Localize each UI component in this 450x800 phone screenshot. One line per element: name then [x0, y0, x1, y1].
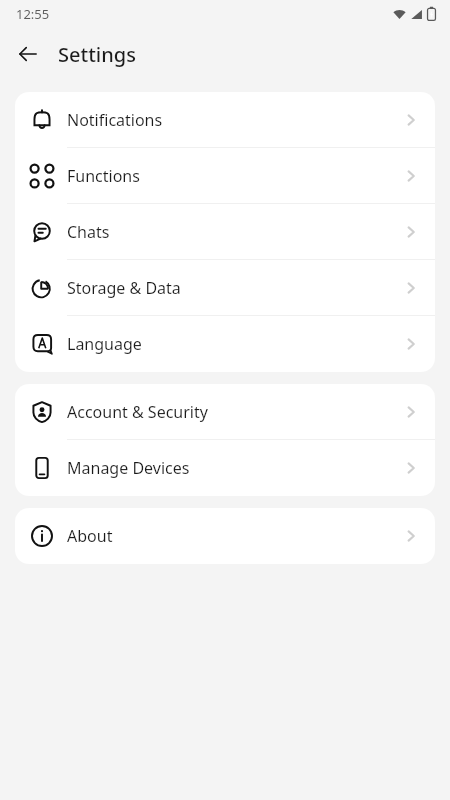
- button[interactable]: Functions: [15, 148, 435, 204]
- staticText: Storage & Data: [67, 277, 181, 299]
- staticText: Settings: [58, 41, 136, 68]
- button[interactable]: Language: [15, 316, 435, 372]
- staticText: Account & Security: [67, 401, 208, 423]
- staticText: 12:55: [16, 5, 50, 23]
- button[interactable]: Chats: [15, 204, 435, 260]
- button[interactable]: Manage Devices: [15, 440, 435, 496]
- button[interactable]: Notifications: [15, 92, 435, 148]
- button[interactable]: Account & Security: [15, 384, 435, 440]
- staticText: Language: [67, 333, 142, 355]
- staticText: Chats: [67, 221, 110, 243]
- staticText: Notifications: [67, 109, 163, 131]
- staticText: Functions: [67, 165, 140, 187]
- button[interactable]: Back: [8, 34, 48, 74]
- staticText: About: [67, 525, 113, 547]
- staticText: Manage Devices: [67, 457, 190, 479]
- button[interactable]: Storage & Data: [15, 260, 435, 316]
- button[interactable]: About: [15, 508, 435, 564]
